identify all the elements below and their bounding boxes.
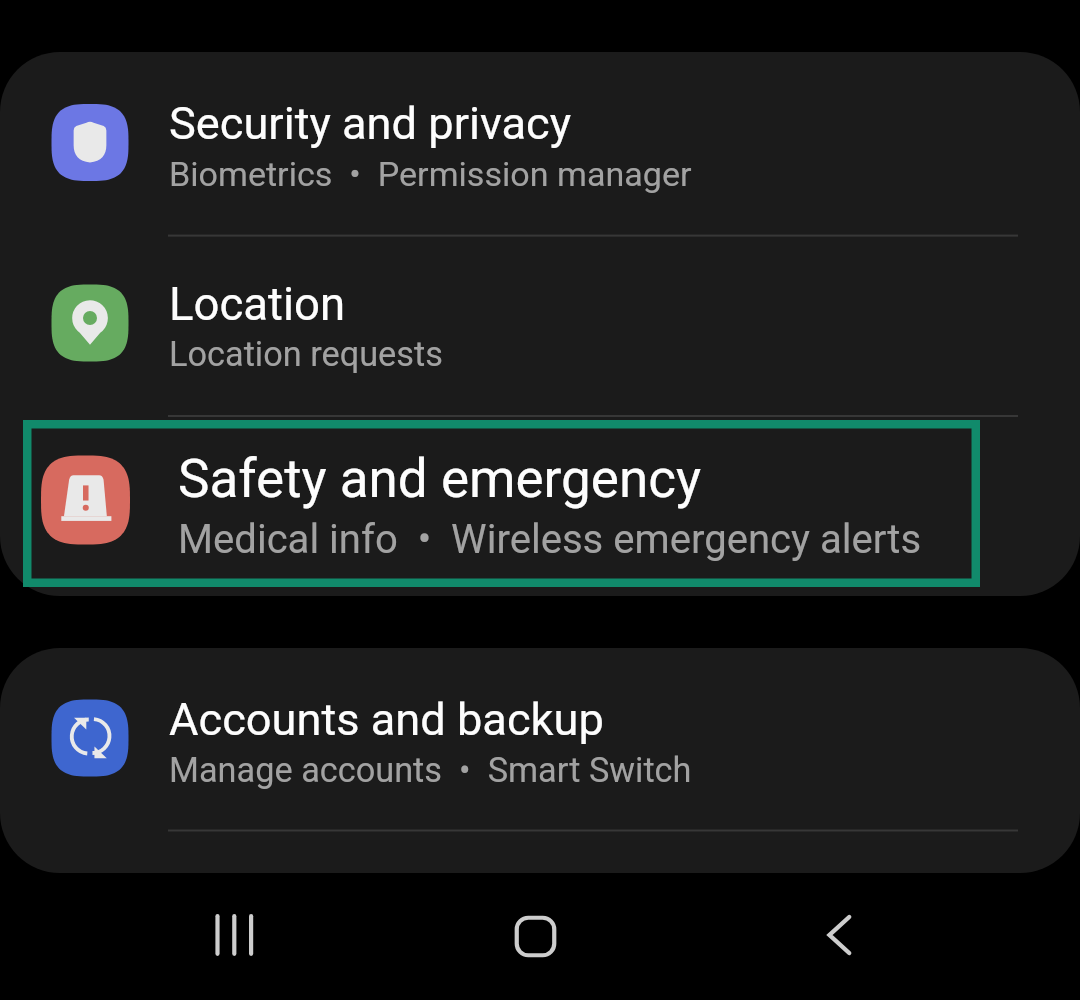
staticText: Biometrics • Permission manager — [169, 154, 692, 194]
button[interactable]: Home — [473, 873, 598, 1000]
staticText: Safety and emergency — [178, 448, 702, 510]
staticText: Location — [169, 278, 346, 331]
staticText: Medical info • Wireless emergency alerts — [178, 516, 922, 563]
staticText: Location requests — [169, 334, 443, 374]
button[interactable]: Back — [776, 873, 901, 1000]
staticText: Security and privacy — [169, 97, 572, 150]
button[interactable]: Safety and emergency — [0, 416, 1080, 596]
staticText: Manage accounts • Smart Switch — [169, 750, 692, 790]
button[interactable]: Accounts and backup — [0, 648, 1080, 830]
button[interactable]: Recent apps — [174, 873, 299, 1000]
button[interactable]: Location — [0, 236, 1080, 416]
button[interactable]: Security and privacy — [0, 52, 1080, 234]
staticText: Accounts and backup — [169, 693, 604, 746]
